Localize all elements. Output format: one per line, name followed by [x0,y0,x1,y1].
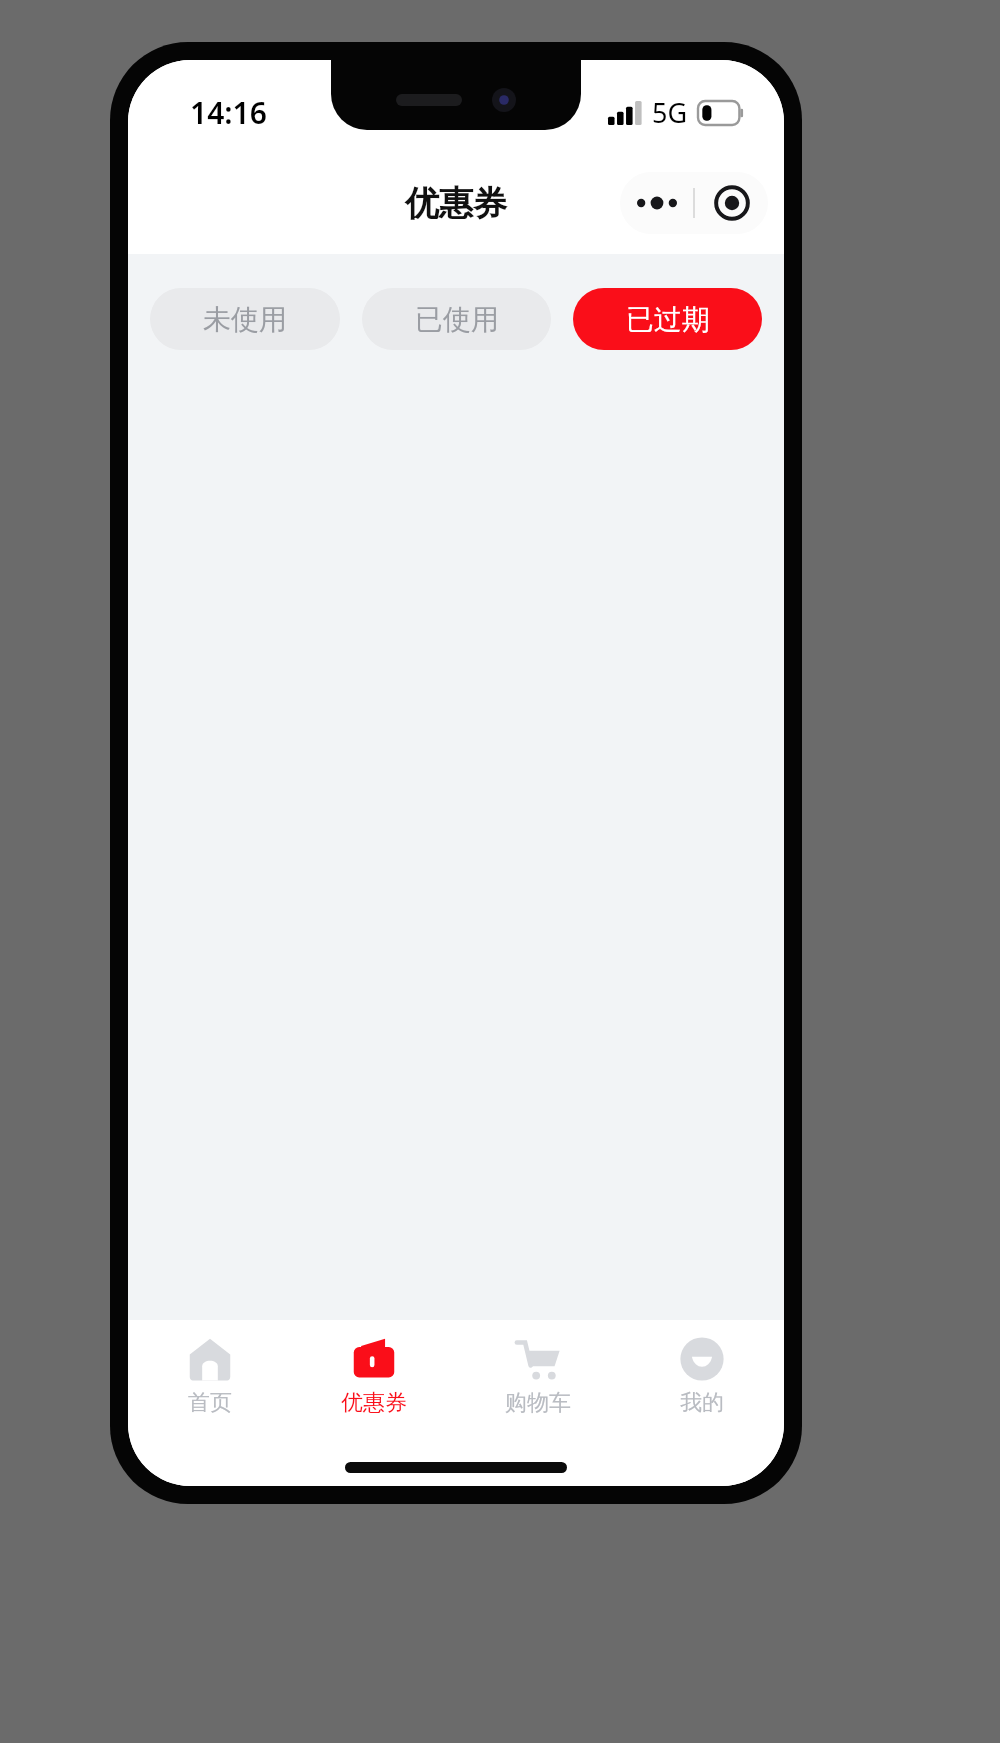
staticText: 优惠券 [341,1389,407,1417]
button[interactable]: 购物车 [456,1320,620,1432]
button[interactable]: 未使用 [150,288,340,350]
staticText: 购物车 [505,1389,571,1417]
staticText: 14:16 [190,92,267,133]
button[interactable]: 首页 [128,1320,292,1432]
button[interactable]: 优惠券 [292,1320,456,1432]
staticText: 我的 [680,1389,724,1417]
button[interactable]: Close [695,172,768,234]
staticText: 首页 [188,1389,232,1417]
staticText: 已使用 [415,302,499,337]
button[interactable]: 已过期 [573,288,762,350]
staticText: 未使用 [203,302,287,337]
button[interactable]: More [620,172,693,234]
button[interactable]: 我的 [620,1320,784,1432]
button[interactable]: 已使用 [362,288,551,350]
staticText: 优惠券 [405,182,507,225]
staticText: 5G [652,94,688,131]
staticText: 已过期 [626,302,710,337]
